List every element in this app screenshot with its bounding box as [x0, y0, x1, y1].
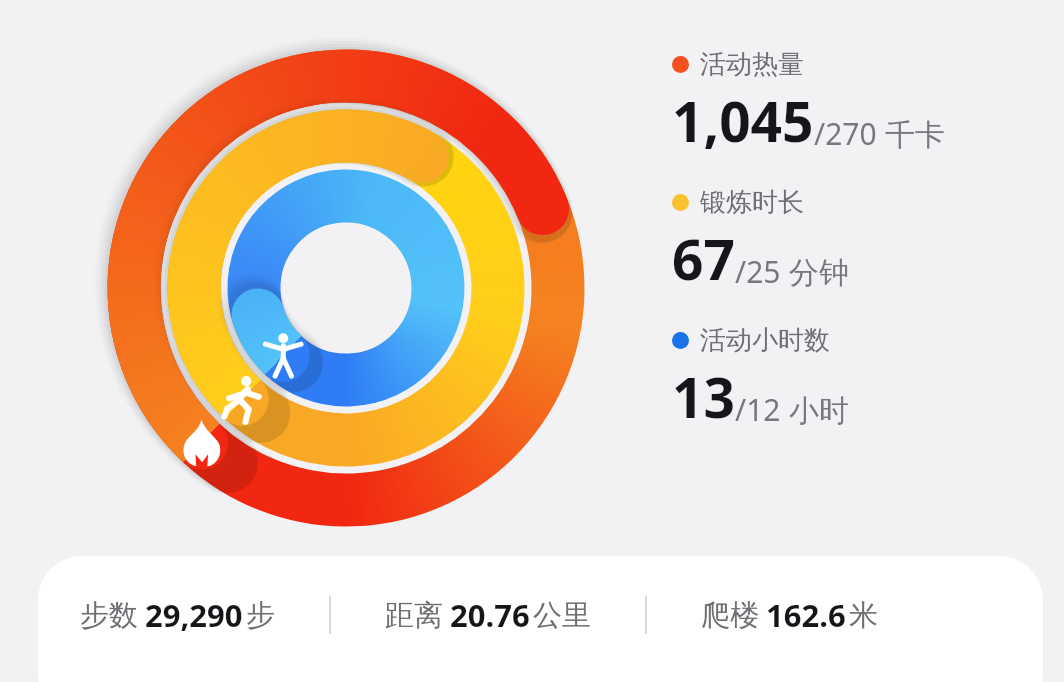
- staticText: /12: [735, 389, 789, 430]
- staticText: 162.6: [766, 594, 846, 636]
- staticText: /25: [735, 251, 789, 292]
- staticText: 锻炼时长: [700, 186, 804, 219]
- button[interactable]: 爬楼: [701, 594, 878, 636]
- staticText: 米: [849, 597, 878, 634]
- staticText: /270: [814, 113, 885, 154]
- staticText: 小时: [789, 392, 849, 430]
- staticText: 活动热量: [700, 48, 804, 81]
- button[interactable]: 距离: [385, 594, 591, 636]
- staticText: 20.76: [450, 594, 530, 636]
- staticText: 活动小时数: [700, 324, 830, 357]
- staticText: 分钟: [789, 254, 849, 292]
- staticText: 1,045: [672, 83, 814, 158]
- staticText: 步: [246, 597, 275, 634]
- staticText: 29,290: [145, 594, 243, 636]
- staticText: 67: [672, 221, 735, 296]
- staticText: 公里: [533, 597, 591, 634]
- button[interactable]: 活动热量: [672, 46, 945, 160]
- button[interactable]: Activity rings: [0, 0, 1064, 682]
- staticText: 爬楼: [701, 597, 759, 634]
- staticText: 距离: [385, 597, 443, 634]
- staticText: 13: [672, 359, 735, 434]
- button[interactable]: 步数: [38, 556, 1043, 682]
- button[interactable]: 步数: [80, 594, 275, 636]
- button[interactable]: 活动小时数: [672, 322, 849, 436]
- staticText: 步数: [80, 597, 138, 634]
- staticText: 千卡: [885, 116, 945, 154]
- button[interactable]: 锻炼时长: [672, 184, 849, 298]
